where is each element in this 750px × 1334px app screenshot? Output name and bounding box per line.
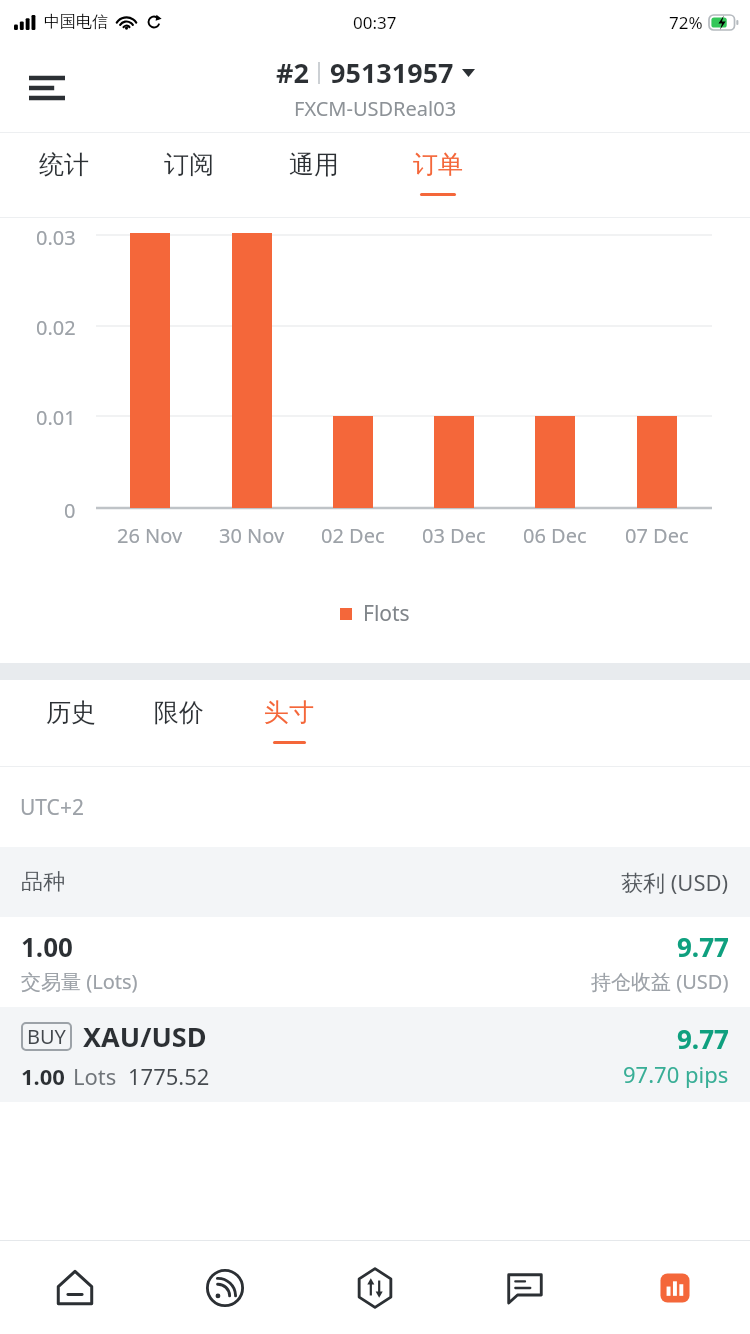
button[interactable]: 订阅 bbox=[155, 133, 223, 217]
staticText: 00:37 bbox=[353, 11, 397, 34]
button[interactable]: BUY bbox=[0, 1007, 750, 1102]
staticText: 头寸 bbox=[264, 697, 314, 728]
button[interactable]: Menu bbox=[16, 57, 78, 119]
button[interactable]: News bbox=[600, 1241, 750, 1334]
staticText: 交易量 (Lots) bbox=[21, 968, 138, 995]
button[interactable]: Trade bbox=[300, 1241, 450, 1334]
button[interactable]: 1.00 bbox=[0, 917, 750, 1007]
button[interactable]: 限价 bbox=[146, 680, 212, 766]
staticText: 0.01 bbox=[36, 404, 76, 431]
button[interactable]: Home bbox=[0, 1241, 150, 1334]
button[interactable]: Quotes bbox=[150, 1241, 300, 1334]
staticText: 1775.52 bbox=[128, 1061, 210, 1091]
staticText: 95131957 bbox=[330, 54, 454, 91]
staticText: 1.00 bbox=[21, 929, 73, 964]
staticText: 07 Dec bbox=[625, 522, 689, 549]
staticText: 品种 bbox=[21, 868, 65, 896]
staticText: 1.00 bbox=[21, 1061, 65, 1091]
staticText: Lots bbox=[73, 1061, 117, 1091]
staticText: 03 Dec bbox=[422, 522, 486, 549]
staticText: 订阅 bbox=[164, 149, 214, 180]
staticText: 72% bbox=[669, 11, 703, 34]
button[interactable]: Chat bbox=[450, 1241, 600, 1334]
staticText: 订单 bbox=[413, 149, 463, 180]
staticText: 26 Nov bbox=[117, 522, 183, 549]
staticText: 0 bbox=[64, 497, 76, 524]
staticText: 中国电信 bbox=[44, 12, 108, 32]
staticText: 97.70 pips bbox=[623, 1059, 729, 1089]
staticText: 30 Nov bbox=[219, 522, 285, 549]
staticText: 统计 bbox=[39, 149, 89, 180]
button[interactable]: 头寸 bbox=[256, 680, 322, 766]
staticText: 限价 bbox=[154, 697, 204, 728]
staticText: Flots bbox=[363, 599, 410, 628]
staticText: BUY bbox=[27, 1023, 66, 1050]
staticText: #2 bbox=[276, 54, 309, 91]
staticText: 历史 bbox=[46, 697, 96, 728]
staticText: 02 Dec bbox=[321, 522, 385, 549]
staticText: 9.77 bbox=[677, 1021, 729, 1056]
staticText: 获利 (USD) bbox=[621, 867, 729, 897]
staticText: 持仓收益 (USD) bbox=[591, 968, 729, 995]
staticText: UTC+2 bbox=[20, 793, 84, 822]
staticText: 0.03 bbox=[36, 224, 76, 251]
button[interactable]: 统计 bbox=[30, 133, 98, 217]
button[interactable]: 订单 bbox=[404, 133, 472, 217]
staticText: 06 Dec bbox=[523, 522, 587, 549]
button[interactable]: 通用 bbox=[280, 133, 348, 217]
staticText: 通用 bbox=[289, 149, 339, 180]
staticText: XAU/USD bbox=[83, 1018, 207, 1055]
button[interactable]: 历史 bbox=[38, 680, 104, 766]
staticText: FXCM-USDReal03 bbox=[294, 95, 457, 122]
staticText: 0.02 bbox=[36, 314, 76, 341]
staticText: 9.77 bbox=[677, 929, 729, 964]
button[interactable]: #2 bbox=[276, 54, 475, 122]
